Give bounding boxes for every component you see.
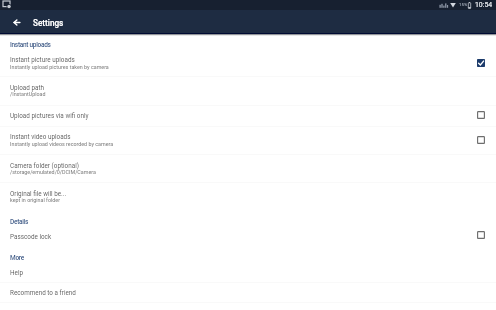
button[interactable]: Enabled [471,53,491,73]
staticText: /storage/emulated/0/DCIM/Camera [10,169,96,175]
staticText: Instant picture uploads [10,56,75,63]
staticText: Help [10,269,23,276]
staticText: Upload pictures via wifi only [10,112,89,119]
staticText: kept in original folder [10,197,60,203]
staticText: Instant video uploads [10,133,71,140]
staticText: Settings [33,18,64,28]
staticText: Instantly upload pictures taken by camer… [10,64,109,70]
button[interactable]: Back [6,12,26,32]
staticText: Recommend to a friend [10,289,76,296]
staticText: 10:54 [475,1,493,9]
staticText: 15% [459,2,468,7]
button[interactable]: Disabled [471,130,491,150]
staticText: More [10,254,24,262]
staticText: Original file will be... [10,190,67,197]
staticText: Camera folder (optional) [10,162,79,169]
staticText: Instantly upload videos recorded by came… [10,141,114,147]
staticText: Passcode lock [10,233,52,240]
staticText: /InstantUpload [10,91,46,97]
button[interactable]: Disabled [471,105,491,125]
staticText: Upload path [10,84,45,91]
staticText: Details [10,218,29,226]
button[interactable]: Disabled [471,225,491,245]
staticText: Instant uploads [10,41,51,49]
